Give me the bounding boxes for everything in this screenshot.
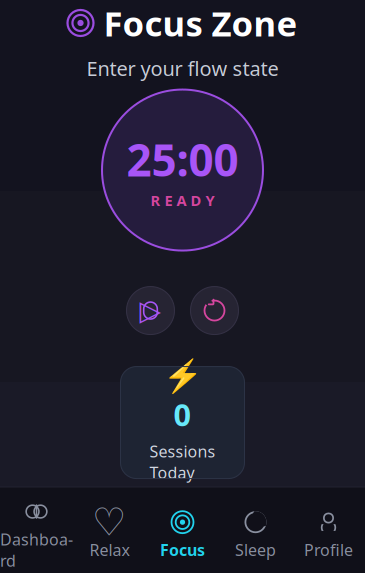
staticText: Dashboard xyxy=(0,528,73,571)
staticText: Relax xyxy=(89,539,129,560)
button[interactable]: ⚡ xyxy=(120,366,244,478)
staticText: Sessions Today xyxy=(149,441,215,483)
staticText: 25:00 xyxy=(126,130,238,188)
staticText: R E A D Y xyxy=(150,190,214,210)
staticText: ♡ xyxy=(92,500,127,544)
staticText: Focus xyxy=(160,539,205,560)
staticText: 0 xyxy=(173,394,191,435)
staticText: Focus Zone xyxy=(103,0,297,46)
staticText: Profile xyxy=(304,539,353,560)
button[interactable]: Start timer xyxy=(126,286,174,334)
staticText: Sleep xyxy=(235,539,276,560)
button[interactable]: Profile xyxy=(292,508,365,562)
button[interactable]: Dashboard xyxy=(0,497,73,573)
button[interactable]: Reset timer xyxy=(190,286,238,334)
staticText: ▷ xyxy=(139,295,161,326)
staticText: ⚡ xyxy=(162,358,202,394)
button[interactable]: ♡ xyxy=(73,508,146,562)
button[interactable]: Focus xyxy=(146,508,219,562)
staticText: Enter your flow state xyxy=(86,55,278,82)
button[interactable]: Sleep xyxy=(219,508,292,562)
